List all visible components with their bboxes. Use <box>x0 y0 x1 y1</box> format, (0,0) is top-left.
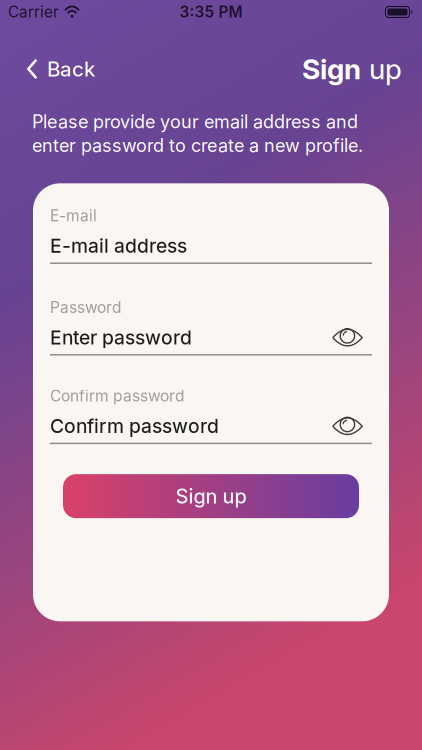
staticText: E-mail address <box>50 234 187 257</box>
button[interactable]: Back <box>27 56 95 81</box>
staticText: enter password to create a new profile. <box>32 135 363 156</box>
staticText: Please provide your email address and <box>32 111 358 133</box>
staticText: Enter password <box>50 326 192 349</box>
staticText: up <box>369 52 402 86</box>
staticText: 3:35 PM <box>179 3 242 21</box>
staticText: Sign up <box>175 484 246 508</box>
staticText: E-mail <box>50 206 97 225</box>
staticText: Back <box>47 56 95 81</box>
staticText: Sign <box>302 52 361 86</box>
staticText: Confirm password <box>50 414 219 438</box>
staticText: Confirm password <box>50 386 184 405</box>
staticText: Password <box>50 298 121 317</box>
button[interactable]: Show password <box>332 416 372 435</box>
button[interactable]: Sign up <box>63 474 359 518</box>
staticText: Carrier <box>8 3 59 21</box>
button[interactable]: Show password <box>332 328 372 347</box>
